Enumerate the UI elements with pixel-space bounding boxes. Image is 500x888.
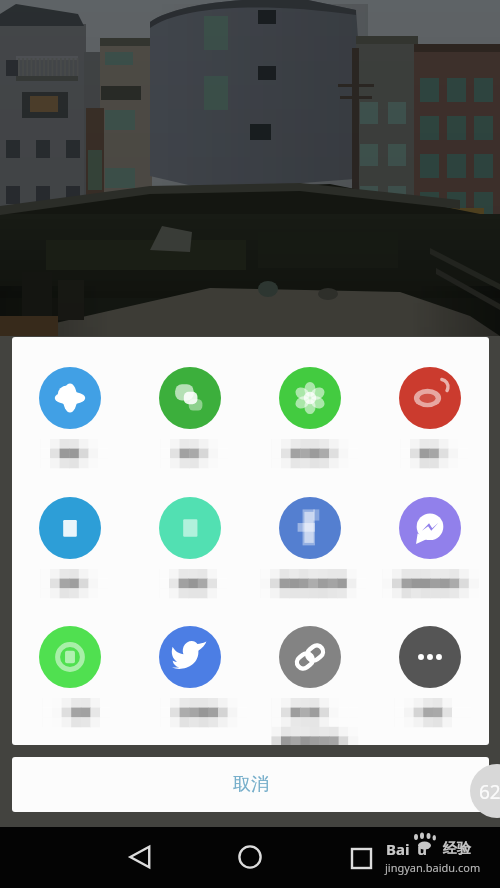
button[interactable]: Share target: [159, 626, 221, 688]
button[interactable]: Share target: [39, 367, 101, 429]
staticText: 取消: [233, 773, 269, 796]
button[interactable]: Share target: [399, 497, 461, 559]
button[interactable]: Back: [114, 831, 166, 883]
staticText: 经验: [443, 840, 471, 858]
button[interactable]: Share target: [399, 626, 461, 688]
button[interactable]: Share target: [39, 497, 101, 559]
button[interactable]: Share target: [159, 497, 221, 559]
button[interactable]: Share target: [399, 367, 461, 429]
staticText: Bai u: [386, 839, 427, 859]
button[interactable]: Home: [224, 831, 276, 883]
button[interactable]: Share target: [279, 626, 341, 688]
staticText: jingyan.baidu.com: [385, 860, 481, 875]
button[interactable]: Share target: [39, 626, 101, 688]
button[interactable]: Share target: [279, 497, 341, 559]
button[interactable]: Share target: [279, 367, 341, 429]
staticText: 62: [479, 779, 500, 805]
button[interactable]: 取消: [12, 757, 489, 812]
button[interactable]: Recents: [335, 832, 387, 884]
button[interactable]: Share target: [159, 367, 221, 429]
